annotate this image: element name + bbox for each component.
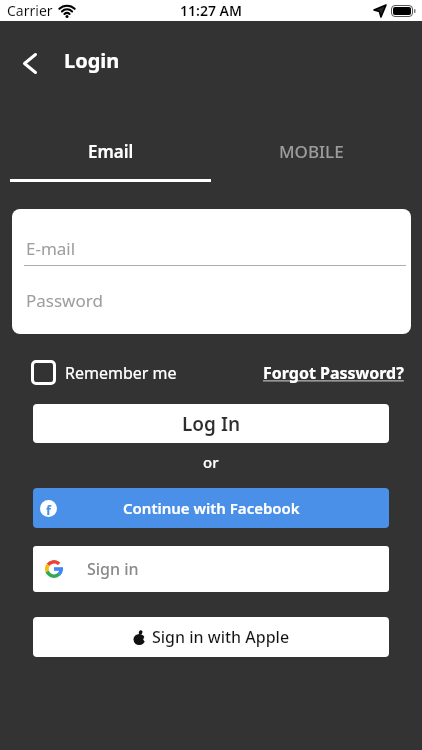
button[interactable]: Sign in with Apple <box>33 617 389 657</box>
staticText: f <box>46 501 52 517</box>
staticText: Login <box>64 47 120 74</box>
staticText: Password <box>26 289 103 312</box>
staticText: Email <box>88 140 134 163</box>
staticText: Remember me <box>65 362 177 384</box>
staticText: Sign in <box>87 558 139 580</box>
staticText: Continue with Facebook <box>123 498 300 518</box>
staticText: Carrier <box>7 1 53 20</box>
staticText: Sign in with Apple <box>152 626 290 648</box>
button[interactable]: Password <box>12 266 411 334</box>
button[interactable]: f <box>33 488 389 528</box>
button[interactable]: MOBILE <box>211 140 412 163</box>
staticText: E-mail <box>26 237 76 260</box>
staticText: or <box>203 452 219 472</box>
button[interactable]: Email <box>10 140 211 163</box>
staticText: 11:27 AM <box>180 1 242 20</box>
button[interactable]: Log In <box>33 404 389 443</box>
button[interactable]: Forgot Password? <box>263 362 404 384</box>
button[interactable] <box>16 49 44 77</box>
button[interactable]: Sign in <box>33 546 389 592</box>
button[interactable]: Remember me <box>31 360 177 385</box>
button[interactable]: E-mail <box>12 209 411 265</box>
staticText: Log In <box>182 411 241 437</box>
staticText: MOBILE <box>279 140 344 163</box>
